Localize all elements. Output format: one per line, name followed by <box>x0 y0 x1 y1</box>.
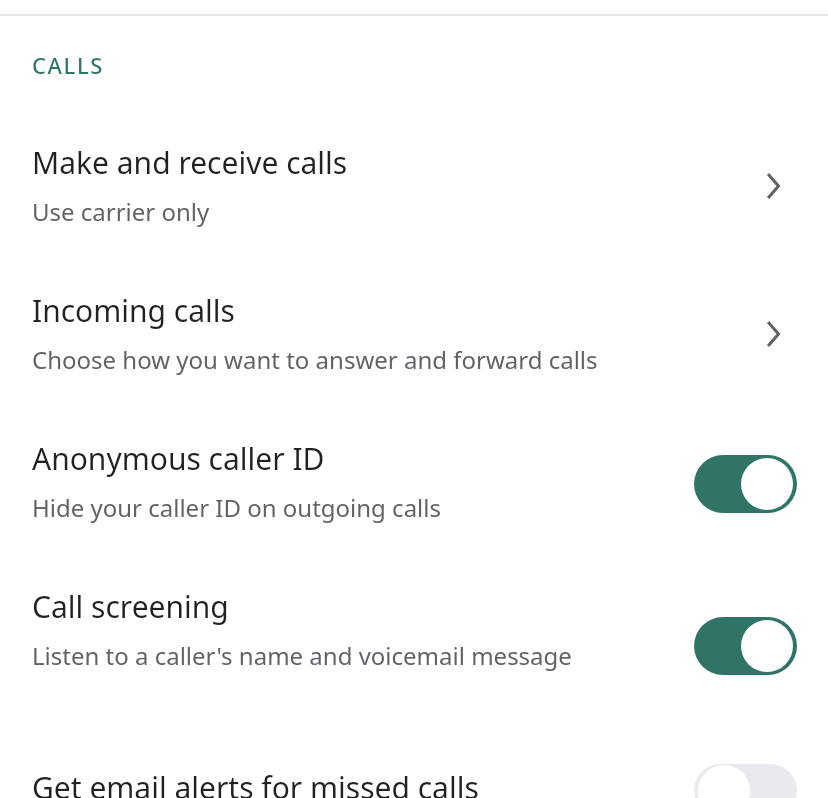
staticText: Anonymous caller ID <box>32 438 325 479</box>
staticText: Hide your caller ID on outgoing calls <box>32 491 441 524</box>
staticText: Use carrier only <box>32 195 210 228</box>
staticText: Choose how you want to answer and forwar… <box>32 343 598 376</box>
staticText: Get email alerts for missed calls <box>32 767 479 798</box>
button[interactable]: Incoming calls <box>0 270 828 386</box>
staticText: Call screening <box>32 586 229 627</box>
staticText: CALLS <box>32 50 104 80</box>
button[interactable]: Call screening <box>0 566 828 716</box>
button[interactable]: Anonymous caller ID <box>0 418 828 536</box>
button[interactable]: Make and receive calls <box>0 122 828 238</box>
button[interactable]: Get email alerts for missed calls <box>0 745 828 798</box>
other: Make and receive calls <box>754 168 790 204</box>
staticText: Incoming calls <box>32 290 235 331</box>
staticText: Listen to a caller's name and voicemail … <box>32 639 572 672</box>
other: Incoming calls <box>754 316 790 352</box>
staticText: Make and receive calls <box>32 142 348 183</box>
